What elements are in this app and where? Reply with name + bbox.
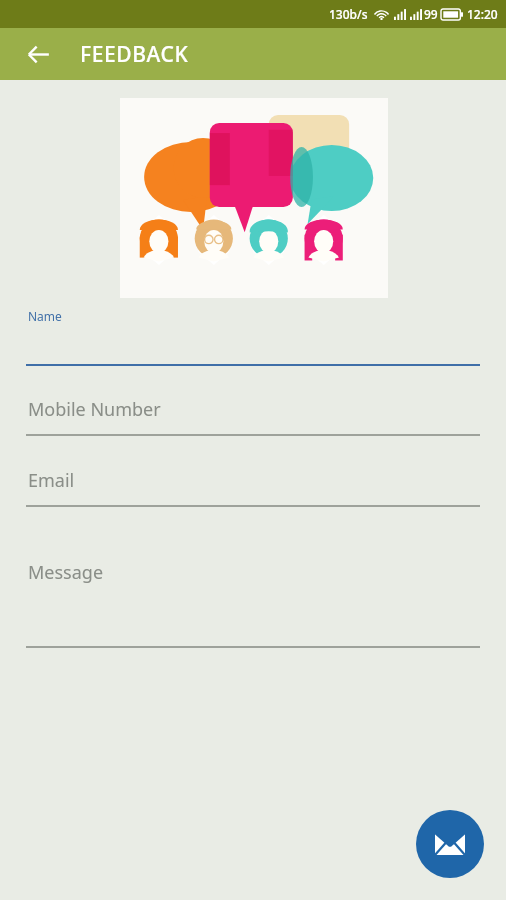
staticText: Message [28, 560, 104, 585]
button[interactable]: Back [16, 32, 60, 76]
staticText: 99 [424, 6, 438, 22]
button[interactable]: Email [0, 463, 506, 507]
staticText: Mobile Number [28, 397, 161, 422]
staticText: 130b/s [329, 6, 368, 22]
button[interactable]: Mobile Number [0, 392, 506, 436]
staticText: 12:20 [467, 6, 498, 22]
staticText: FEEDBACK [80, 40, 189, 69]
staticText: Email [28, 468, 75, 493]
button[interactable]: Send feedback [416, 810, 484, 878]
staticText: Name [28, 308, 62, 324]
